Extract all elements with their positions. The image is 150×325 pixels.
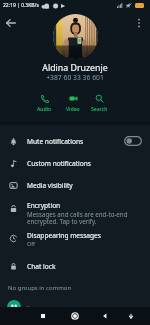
staticText: Off <box>27 240 35 247</box>
staticText: No groups in common <box>8 284 72 292</box>
staticText: Encryption <box>27 201 61 210</box>
staticText: +387 60 33 36 601 <box>0 73 150 82</box>
button[interactable]: Recents <box>35 307 51 325</box>
button[interactable]: More options <box>131 15 147 31</box>
button[interactable]: Custom notifications <box>0 152 150 174</box>
staticText: Chat lock <box>27 262 56 271</box>
button[interactable]: Media visibility <box>0 174 150 196</box>
staticText: Search <box>91 105 108 112</box>
button[interactable]: Disappearing messages <box>0 228 150 255</box>
button[interactable]: Home <box>67 307 83 325</box>
button[interactable]: Mute notifications <box>0 130 150 152</box>
staticText: Disappearing messages <box>27 231 102 240</box>
staticText: Report contact <box>26 304 68 312</box>
button[interactable]: Back <box>97 307 113 325</box>
staticText: Media visibility <box>27 181 73 190</box>
staticText: Messages and calls are end-to-end encryp… <box>27 210 128 225</box>
button[interactable]: Back <box>3 15 19 31</box>
button[interactable]: Search <box>85 88 113 114</box>
staticText: Custom notifications <box>27 159 91 168</box>
button[interactable]: Mute notifications toggle <box>124 136 142 146</box>
staticText: Mute notifications <box>27 137 84 146</box>
staticText: Aldina Druzenje <box>0 62 150 74</box>
staticText: Audio <box>37 105 52 112</box>
button[interactable]: Audio <box>30 88 58 114</box>
button[interactable]: Video <box>59 88 87 114</box>
button[interactable]: Chat lock <box>0 255 150 277</box>
staticText: 22:19 | 0.3KB/s <box>3 2 39 9</box>
button[interactable]: Encryption <box>0 196 150 228</box>
button[interactable]: Hide keyboard <box>123 307 139 325</box>
staticText: Video <box>66 105 80 112</box>
